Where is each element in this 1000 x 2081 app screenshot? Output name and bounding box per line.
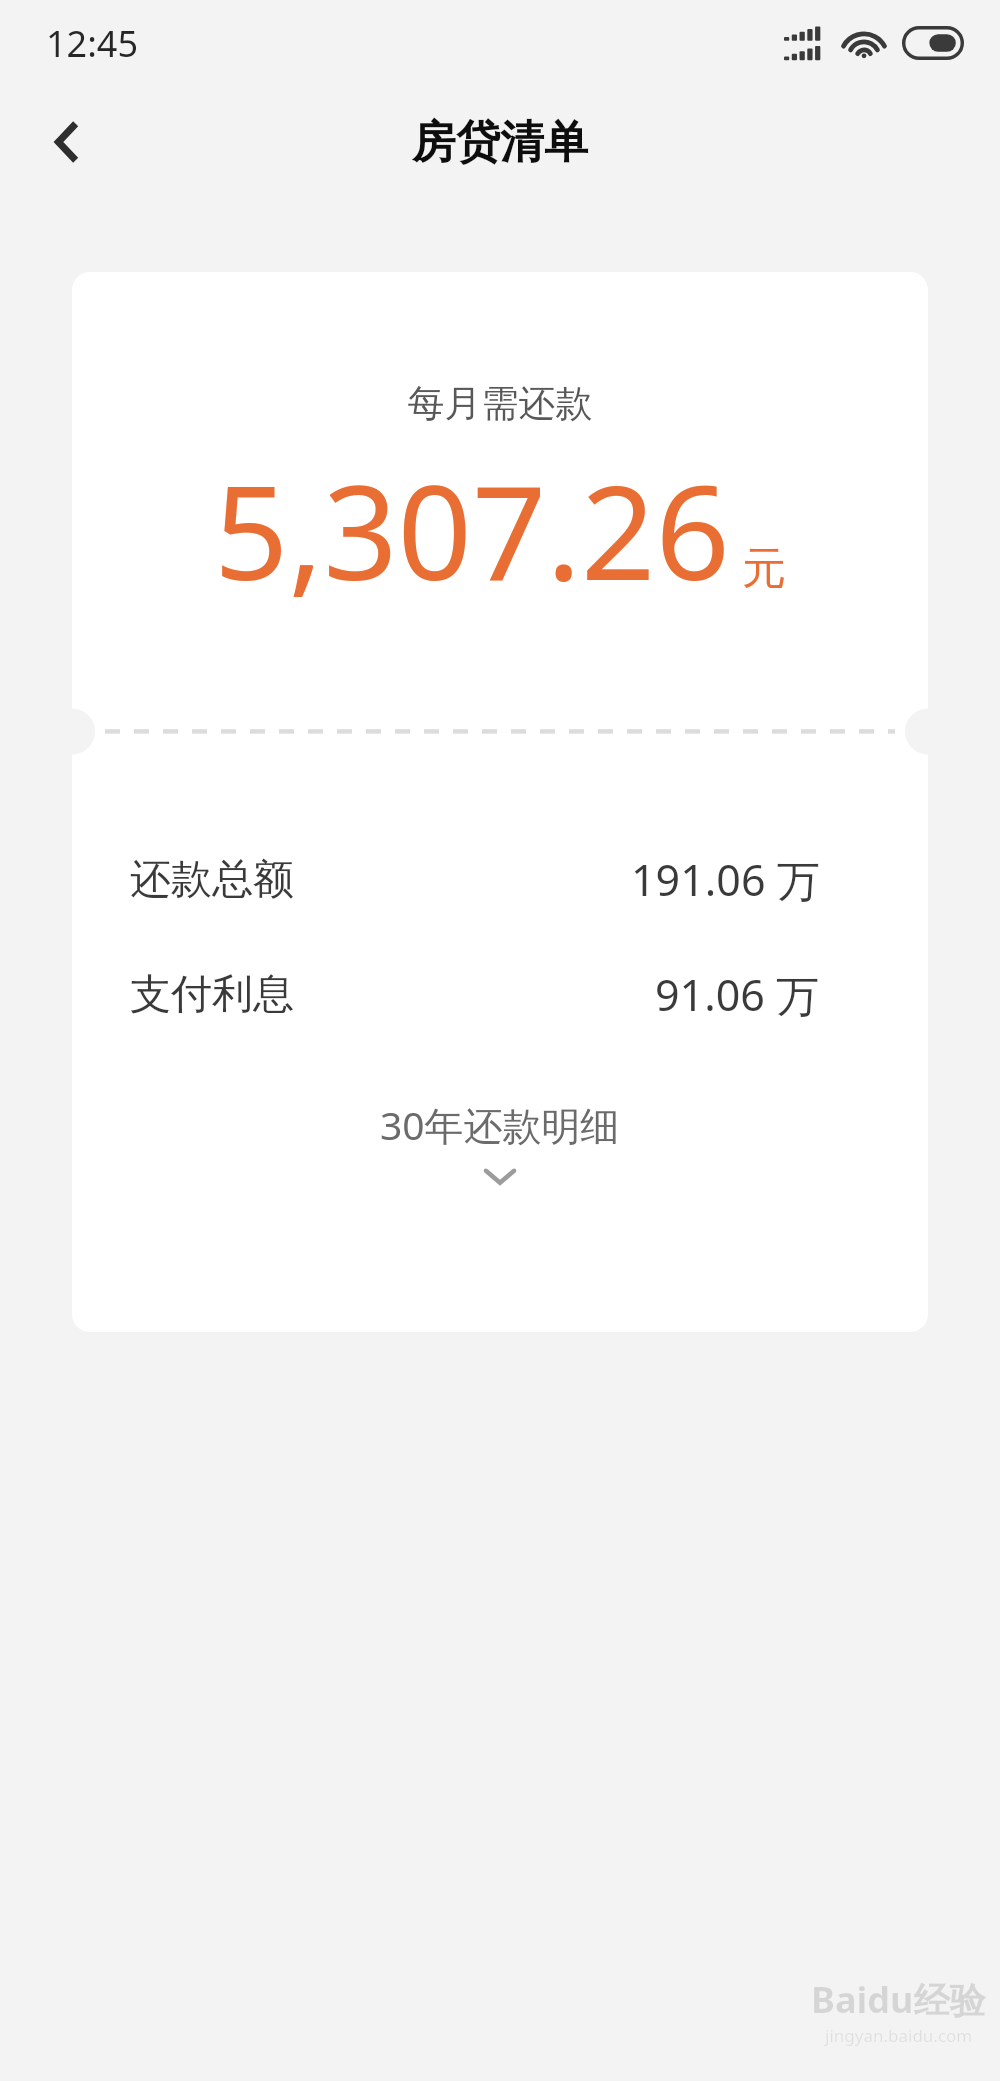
staticText: jingyan.baidu.com — [825, 2024, 973, 2047]
staticText: 还款总额 — [130, 854, 294, 906]
button[interactable]: 30年还款明细 — [72, 1098, 928, 1189]
button[interactable]: Back — [16, 90, 120, 194]
staticText: Baidu经验 — [811, 1975, 986, 2024]
staticText: 房贷清单 — [412, 115, 588, 170]
staticText: 每月需还款 — [72, 380, 928, 427]
staticText: 91.06 万 — [655, 965, 820, 1024]
staticText: 191.06 万 — [631, 850, 820, 909]
staticText: 支付利息 — [130, 969, 294, 1021]
staticText: 元 — [742, 541, 786, 596]
staticText: 30年还款明细 — [380, 1098, 620, 1151]
staticText: 5,307.26 — [214, 441, 730, 618]
staticText: 12:45 — [46, 19, 139, 68]
